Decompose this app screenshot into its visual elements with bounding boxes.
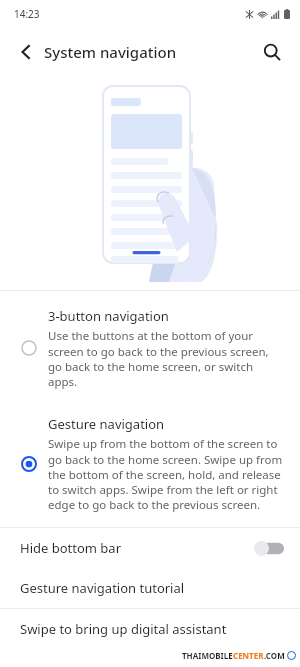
button[interactable]: Gesture navigation tutorial <box>0 568 300 608</box>
staticText: System navigation <box>44 42 177 62</box>
staticText: Use the buttons at the bottom of your sc… <box>48 328 284 389</box>
button[interactable]: Search <box>254 34 290 70</box>
button[interactable]: 3-button navigation <box>0 301 300 395</box>
staticText: .COM <box>264 650 285 661</box>
staticText: THAIMOBILE <box>182 650 233 661</box>
staticText: Gesture navigation <box>48 415 165 433</box>
staticText: Swipe up from the bottom of the screen t… <box>48 436 284 512</box>
staticText: Swipe to bring up digital assistant <box>20 620 227 638</box>
button[interactable]: Back <box>8 34 44 70</box>
staticText: Gesture navigation tutorial <box>20 579 185 597</box>
button[interactable]: Swipe to bring up digital assistant <box>0 609 300 649</box>
staticText: CENTER <box>233 650 264 661</box>
staticText: 3-button navigation <box>48 307 169 325</box>
staticText: 14:23 <box>14 7 40 21</box>
button[interactable]: Hide bottom bar <box>0 528 300 568</box>
button[interactable]: Gesture navigation <box>0 409 300 518</box>
staticText: Hide bottom bar <box>20 539 254 557</box>
